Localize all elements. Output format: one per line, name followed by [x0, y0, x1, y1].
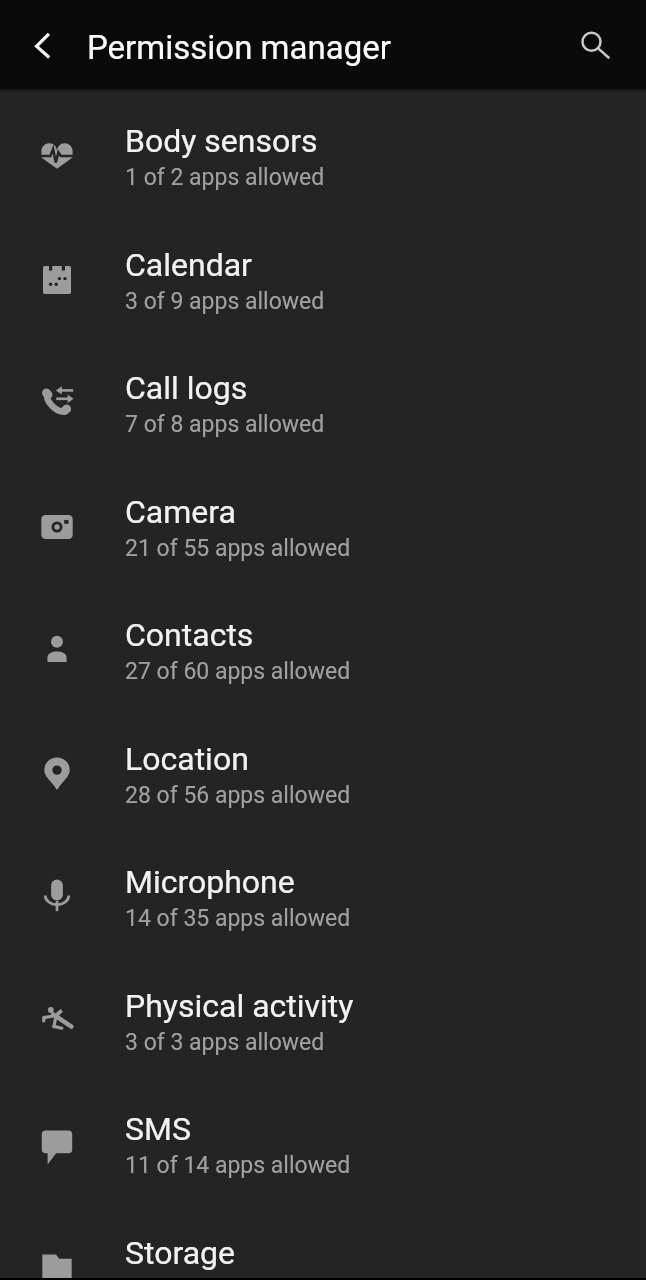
staticText: 11 of 14 apps allowed [125, 1152, 351, 1179]
button[interactable]: Call logs [0, 341, 646, 465]
staticText: 3 of 9 apps allowed [125, 288, 325, 315]
staticText: Body sensors [125, 122, 318, 160]
button[interactable]: Body sensors [0, 94, 646, 218]
staticText: 7 of 8 apps allowed [125, 411, 325, 438]
button[interactable]: Calendar [0, 218, 646, 342]
staticText: Location [125, 740, 249, 778]
button[interactable]: Contacts [0, 588, 646, 712]
staticText: 21 of 55 apps allowed [125, 535, 351, 562]
staticText: 14 of 35 apps allowed [125, 905, 351, 932]
button[interactable]: Camera [0, 465, 646, 589]
staticText: 28 of 56 apps allowed [125, 782, 351, 809]
staticText: Physical activity [125, 987, 354, 1025]
staticText: 17 of 40 apps allowed [125, 1276, 351, 1280]
staticText: Camera [125, 493, 236, 531]
button[interactable]: Location [0, 712, 646, 836]
button[interactable]: Physical activity [0, 959, 646, 1083]
button[interactable]: Search [560, 0, 630, 89]
staticText: Call logs [125, 369, 248, 407]
staticText: 3 of 3 apps allowed [125, 1029, 325, 1056]
button[interactable]: Navigate up [10, 0, 74, 89]
button[interactable]: Microphone [0, 835, 646, 959]
staticText: Permission manager [87, 28, 391, 67]
staticText: 1 of 2 apps allowed [125, 164, 325, 191]
button[interactable]: Storage [0, 1206, 646, 1280]
staticText: SMS [125, 1110, 191, 1148]
staticText: Calendar [125, 246, 252, 284]
button[interactable]: SMS [0, 1082, 646, 1206]
staticText: 27 of 60 apps allowed [125, 658, 351, 685]
staticText: Microphone [125, 863, 295, 901]
staticText: Storage [125, 1234, 235, 1272]
staticText: Contacts [125, 616, 254, 654]
